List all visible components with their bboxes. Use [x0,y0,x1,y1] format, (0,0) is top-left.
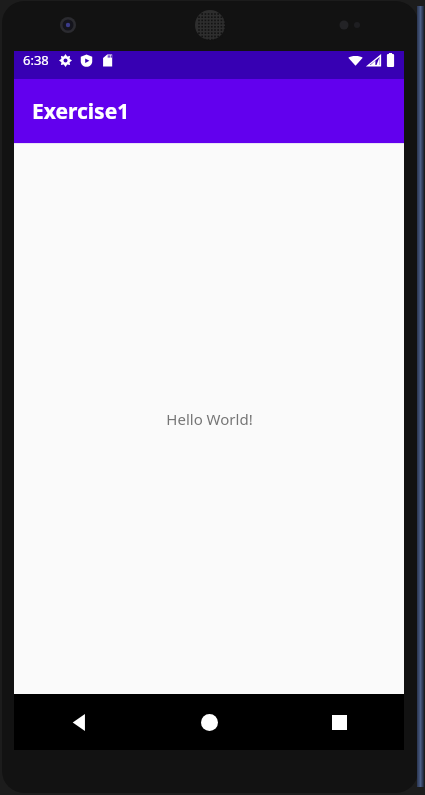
staticText: Exercise1 [32,97,130,126]
staticText: 6:38 [23,51,49,69]
button[interactable]: Exercise1 [14,79,404,143]
staticText: Hello World! [166,409,253,429]
button[interactable]: Home [144,694,274,750]
button[interactable]: Recent apps [274,694,404,750]
button[interactable]: Back [14,694,144,750]
